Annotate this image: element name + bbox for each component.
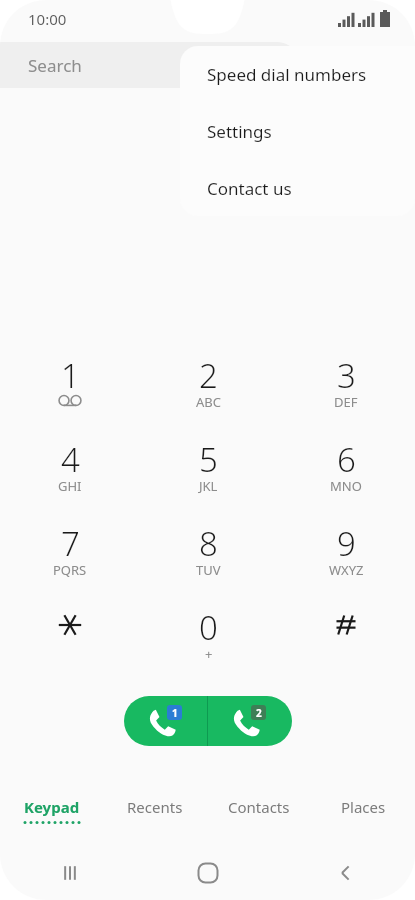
button[interactable]: Recents <box>103 790 207 838</box>
staticText: Contact us <box>207 177 292 200</box>
staticText: 0 <box>199 605 218 650</box>
staticText: 9 <box>337 521 356 566</box>
staticText: 10:00 <box>28 9 67 29</box>
button[interactable]: 4 <box>0 429 139 513</box>
button[interactable]: 2 <box>139 345 277 429</box>
button[interactable]: Back <box>277 846 415 900</box>
staticText: MNO <box>330 477 362 495</box>
staticText: ABC <box>196 393 221 411</box>
staticText: 2 <box>256 706 262 720</box>
button[interactable]: Search <box>0 42 300 88</box>
staticText: JKL <box>199 477 218 495</box>
staticText: Keypad <box>24 797 80 817</box>
button[interactable]: Places <box>311 790 415 838</box>
staticText: Places <box>341 797 386 817</box>
button[interactable]: 9 <box>277 513 415 597</box>
staticText: 8 <box>199 521 218 566</box>
button[interactable]: 5 <box>139 429 277 513</box>
button[interactable]: 7 <box>0 513 139 597</box>
staticText: 6 <box>337 437 356 482</box>
button[interactable]: Recent apps <box>0 846 139 900</box>
button[interactable]: 6 <box>277 429 415 513</box>
button[interactable]: Speed dial numbers <box>180 46 415 103</box>
staticText: GHI <box>58 477 82 495</box>
staticText: 3 <box>337 353 356 398</box>
staticText: Search <box>28 54 82 77</box>
staticText: WXYZ <box>329 561 364 579</box>
button[interactable]: Call with SIM 1 <box>124 696 207 746</box>
button[interactable]: 8 <box>139 513 277 597</box>
staticText: 2 <box>199 353 218 398</box>
staticText: DEF <box>334 393 358 411</box>
staticText: + <box>205 645 213 663</box>
staticText: 7 <box>61 521 80 566</box>
button[interactable]: Call with SIM 2 <box>208 696 292 746</box>
button[interactable]: Keypad <box>0 790 103 838</box>
staticText: Settings <box>207 120 272 143</box>
button[interactable] <box>0 597 139 681</box>
button[interactable]: Settings <box>180 103 415 160</box>
button[interactable]: Home <box>139 846 277 900</box>
staticText: 5 <box>199 437 218 482</box>
button[interactable] <box>277 597 415 681</box>
staticText: 1 <box>172 706 178 720</box>
staticText: PQRS <box>53 561 87 579</box>
staticText: Recents <box>127 797 183 817</box>
button[interactable]: Contact us <box>180 160 415 216</box>
staticText: Speed dial numbers <box>207 63 367 86</box>
button[interactable]: 0 <box>139 597 277 681</box>
staticText: Contacts <box>228 797 290 817</box>
button[interactable]: 3 <box>277 345 415 429</box>
button[interactable]: 1 <box>0 345 139 429</box>
button[interactable]: Contacts <box>207 790 311 838</box>
staticText: TUV <box>196 561 221 579</box>
staticText: 1 <box>61 353 80 398</box>
staticText: 4 <box>61 437 80 482</box>
